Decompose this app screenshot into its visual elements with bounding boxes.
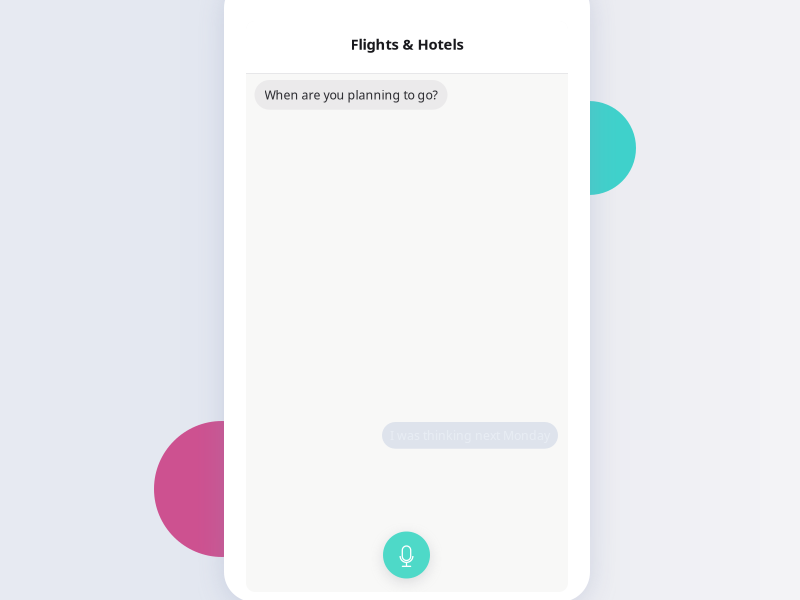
button[interactable]: Record voice message [383, 531, 430, 578]
staticText: When are you planning to go? [264, 86, 437, 103]
staticText: Flights & Hotels [350, 34, 463, 54]
